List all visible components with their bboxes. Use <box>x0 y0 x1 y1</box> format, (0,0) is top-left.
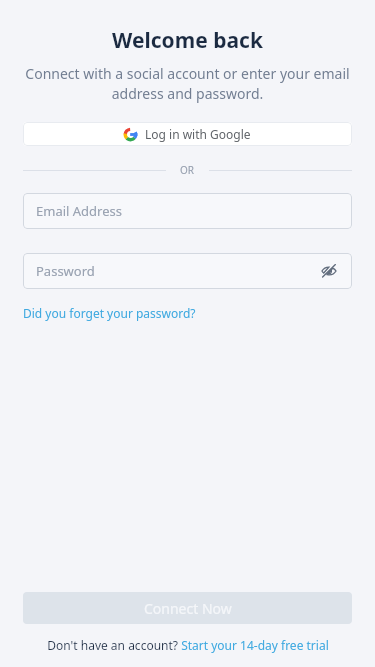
staticText: Password <box>36 262 319 280</box>
button[interactable]: Don't have an account? Start your 14-day… <box>0 637 375 653</box>
staticText: Email Address <box>36 202 339 220</box>
staticText: Did you forget your password? <box>23 305 196 321</box>
button[interactable]: Connect Now <box>23 592 352 624</box>
button[interactable]: Did you forget your password? <box>23 305 196 321</box>
staticText: Don't have an account? Start your 14-day… <box>47 637 329 653</box>
button[interactable]: Log in with Google <box>23 122 352 146</box>
button[interactable]: Password <box>23 253 352 289</box>
button[interactable]: Show password <box>319 261 339 281</box>
staticText: Connect Now <box>144 599 232 618</box>
staticText: OR <box>180 163 195 177</box>
button[interactable]: Email Address <box>23 193 352 229</box>
staticText: Log in with Google <box>145 126 251 142</box>
staticText: Welcome back <box>0 26 375 55</box>
staticText: Connect with a social account or enter y… <box>24 64 351 104</box>
